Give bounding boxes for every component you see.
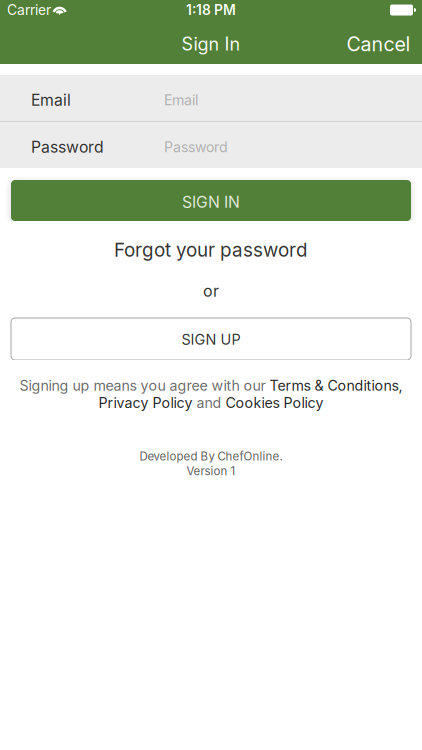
staticText: Sign In: [181, 33, 240, 55]
staticText: SIGN IN: [182, 192, 240, 211]
button[interactable]: Email: [0, 75, 422, 121]
button[interactable]: SIGN IN: [11, 180, 411, 221]
staticText: Cancel: [346, 32, 410, 56]
staticText: Cookies Policy: [225, 394, 323, 411]
staticText: Password: [31, 137, 104, 156]
button[interactable]: Forgot your password: [0, 238, 422, 262]
staticText: Email: [164, 91, 198, 108]
button[interactable]: Cancel: [330, 20, 422, 64]
staticText: Signing up means you agree with our: [19, 377, 269, 394]
staticText: Privacy Policy: [98, 394, 192, 411]
staticText: Forgot your password: [114, 239, 308, 261]
staticText: Terms & Conditions,: [269, 377, 402, 394]
staticText: Carrier: [7, 2, 51, 18]
button[interactable]: Cookies Policy: [225, 394, 323, 411]
button[interactable]: SIGN UP: [11, 318, 411, 360]
button[interactable]: Password: [0, 122, 422, 168]
button[interactable]: Privacy Policy: [98, 394, 192, 411]
staticText: Email: [31, 90, 71, 109]
staticText: 1:18 PM: [186, 2, 236, 18]
staticText: and: [192, 394, 225, 411]
staticText: SIGN UP: [181, 331, 240, 348]
staticText: Version 1: [186, 464, 235, 478]
staticText: Password: [164, 138, 228, 155]
button[interactable]: Terms & Conditions,: [269, 377, 402, 394]
staticText: Developed By ChefOnline.: [139, 449, 282, 463]
staticText: or: [203, 281, 219, 301]
